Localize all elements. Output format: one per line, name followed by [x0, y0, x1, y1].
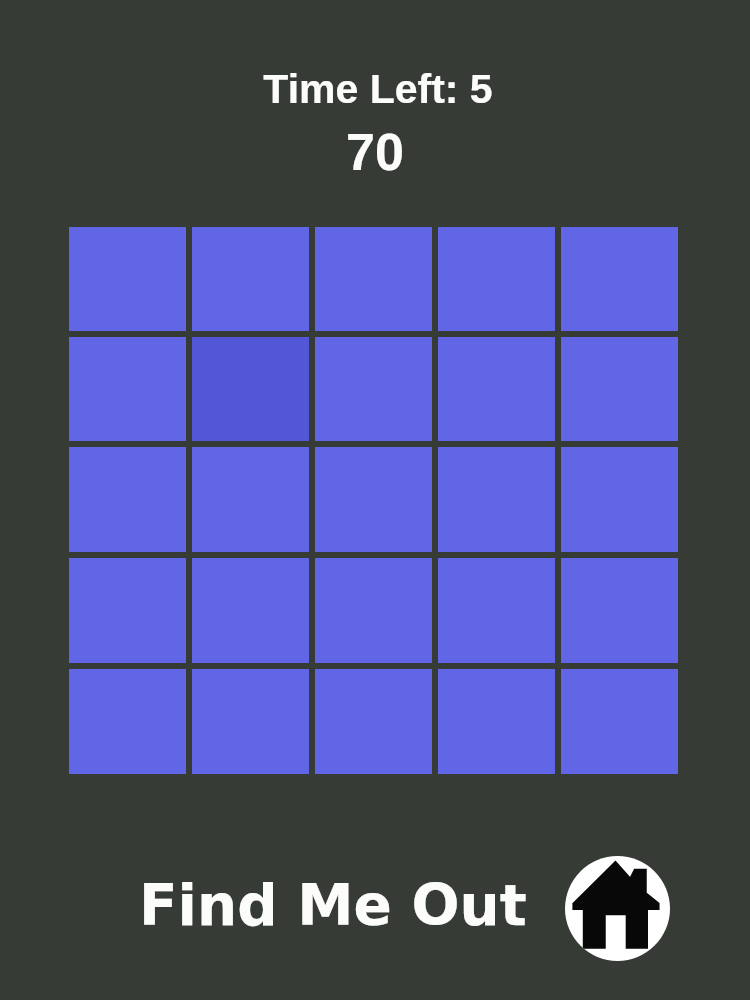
staticText: Find Me Out [139, 873, 527, 939]
button[interactable]: Home [565, 856, 670, 961]
staticText: Time Left: 5 [3, 66, 750, 112]
button[interactable]: Find Me Out [139, 873, 527, 939]
staticText: 70 [0, 123, 750, 181]
